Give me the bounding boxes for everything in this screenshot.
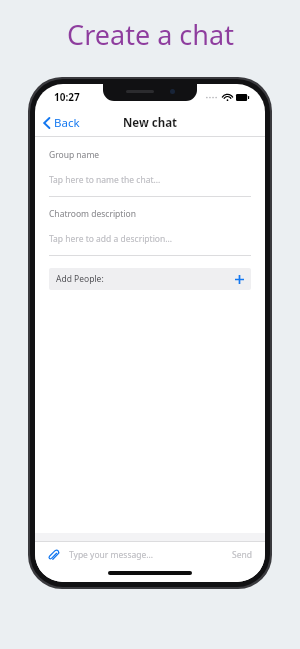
button[interactable]: Tap here to add a description... — [49, 233, 251, 245]
button[interactable]: Send — [229, 546, 255, 564]
button[interactable]: Attach file — [45, 547, 61, 563]
staticText: Create a chat — [67, 16, 234, 53]
staticText: Send — [232, 549, 252, 561]
button[interactable]: Add People: — [49, 268, 251, 290]
staticText: 10:27 — [54, 90, 80, 104]
staticText: Add People: — [56, 273, 104, 285]
staticText: New chat — [123, 115, 178, 131]
staticText: Chatroom description — [49, 208, 137, 220]
other: Add people — [235, 275, 244, 284]
staticText: Back — [54, 115, 80, 131]
button[interactable]: Back — [35, 111, 88, 135]
staticText: Type your message... — [69, 549, 154, 561]
staticText: Tap here to name the chat... — [49, 174, 161, 186]
button[interactable]: Type your message... — [69, 549, 229, 561]
button[interactable]: Tap here to name the chat... — [49, 174, 251, 186]
staticText: Tap here to add a description... — [49, 233, 173, 245]
staticText: Group name — [49, 149, 100, 161]
